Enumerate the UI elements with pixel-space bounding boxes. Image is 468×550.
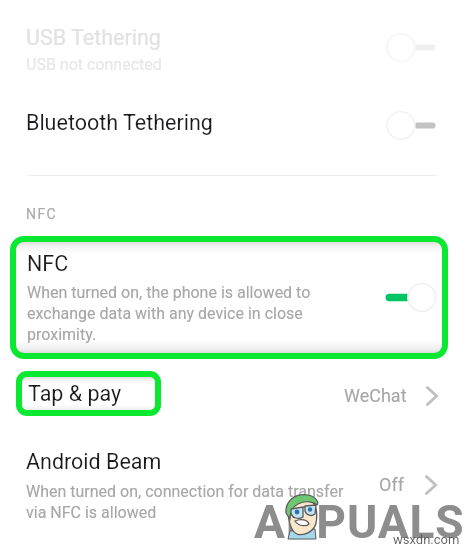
other: Toggle — [375, 100, 437, 151]
other: Open — [426, 386, 438, 406]
staticText: WeChat — [344, 385, 407, 406]
other: Open — [425, 475, 437, 495]
staticText: When turned on, the phone is allowed to … — [27, 283, 311, 344]
staticText: USB not connected — [26, 55, 162, 74]
button[interactable]: USB Tethering — [0, 12, 468, 82]
staticText: Android Beam — [26, 449, 162, 474]
staticText: Bluetooth Tethering — [26, 110, 213, 135]
staticText: When turned on, connection for data tran… — [26, 482, 344, 522]
button[interactable]: Android Beam — [0, 440, 468, 530]
staticText: NFC — [26, 206, 58, 222]
button[interactable]: NFC — [10, 236, 448, 359]
other: Toggle NFC — [378, 272, 440, 323]
staticText: Off — [379, 474, 404, 495]
other: Toggle — [375, 22, 437, 73]
button[interactable]: Tap & pay — [0, 365, 468, 421]
staticText: NFC — [27, 251, 69, 276]
button[interactable]: Bluetooth Tethering — [0, 97, 468, 155]
staticText: APPUALS — [254, 495, 465, 549]
staticText: Tap & pay — [28, 381, 122, 406]
staticText: wsxdn.com — [393, 532, 460, 547]
staticText: USB Tethering — [26, 25, 161, 50]
